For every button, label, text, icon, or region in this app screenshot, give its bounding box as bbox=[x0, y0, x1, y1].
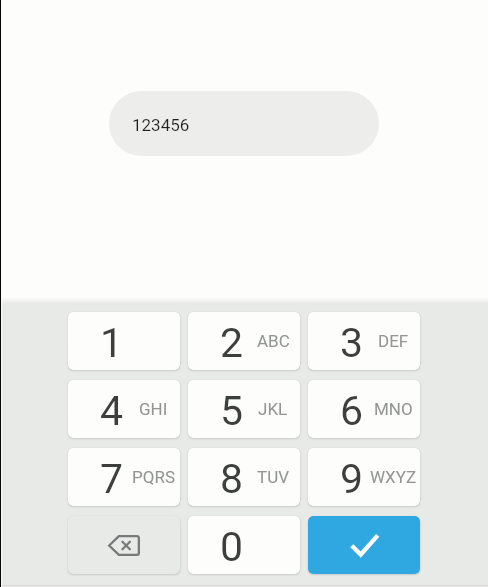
staticText: 4 bbox=[100, 387, 124, 435]
button[interactable]: 5 bbox=[188, 380, 300, 438]
staticText: 3 bbox=[340, 319, 364, 367]
button[interactable]: 3 bbox=[308, 312, 420, 370]
button[interactable]: 6 bbox=[308, 380, 420, 438]
button[interactable]: Backspace bbox=[68, 516, 180, 574]
button[interactable]: 2 bbox=[188, 312, 300, 370]
staticText: 2 bbox=[220, 319, 244, 367]
staticText: 1 bbox=[100, 319, 124, 367]
button[interactable]: 8 bbox=[188, 448, 300, 506]
staticText: 9 bbox=[340, 455, 364, 503]
button[interactable]: 7 bbox=[68, 448, 180, 506]
staticText: JKL bbox=[258, 399, 288, 419]
staticText: 8 bbox=[220, 455, 244, 503]
button[interactable]: 9 bbox=[308, 448, 420, 506]
staticText: PQRS bbox=[132, 467, 175, 487]
staticText: WXYZ bbox=[370, 467, 417, 487]
button[interactable]: 1 bbox=[68, 312, 180, 370]
staticText: 5 bbox=[220, 387, 244, 435]
staticText: 7 bbox=[100, 455, 124, 503]
staticText: 123456 bbox=[132, 115, 190, 135]
staticText: GHI bbox=[139, 399, 168, 419]
staticText: DEF bbox=[378, 331, 409, 351]
button[interactable]: 0 bbox=[188, 516, 300, 574]
staticText: MNO bbox=[374, 399, 413, 419]
button[interactable]: Confirm bbox=[308, 516, 420, 574]
staticText: 6 bbox=[340, 387, 364, 435]
staticText: 0 bbox=[220, 523, 244, 571]
button[interactable]: 4 bbox=[68, 380, 180, 438]
staticText: TUV bbox=[257, 467, 289, 487]
staticText: ABC bbox=[257, 331, 290, 351]
button[interactable]: 123456 bbox=[109, 91, 379, 156]
